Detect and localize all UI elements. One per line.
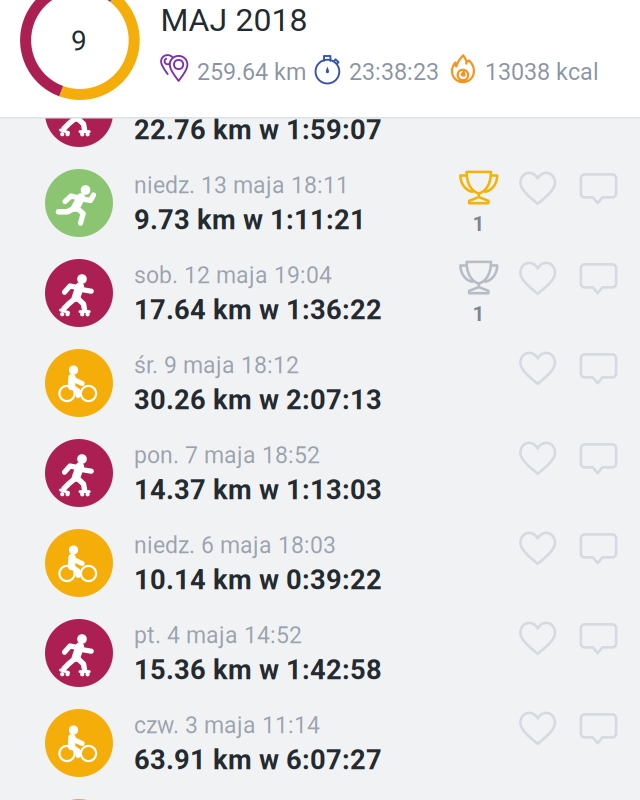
staticText: 13038 kcal bbox=[485, 58, 599, 86]
staticText: 22.76 km w 1:59:07 bbox=[134, 114, 382, 146]
staticText: pt. 4 maja 14:52 bbox=[134, 622, 302, 649]
staticText: śr. 9 maja 18:12 bbox=[134, 352, 299, 379]
button[interactable]: śr. 9 maja 18:12 bbox=[0, 338, 640, 428]
button[interactable]: niedz. 6 maja 18:03 bbox=[0, 518, 640, 608]
button[interactable]: pon. 7 maja 18:52 bbox=[0, 428, 640, 518]
button[interactable]: pt. 4 maja 14:52 bbox=[0, 608, 640, 698]
staticText: pon. 7 maja 18:52 bbox=[134, 442, 320, 469]
button[interactable] bbox=[0, 788, 640, 800]
staticText: czw. 3 maja 11:14 bbox=[134, 712, 320, 739]
staticText: 30.26 km w 2:07:13 bbox=[134, 384, 382, 416]
staticText: niedz. 13 maja 18:11 bbox=[134, 172, 349, 199]
staticText: niedz. 6 maja 18:03 bbox=[134, 532, 336, 559]
staticText: 15.36 km w 1:42:58 bbox=[134, 654, 382, 686]
button[interactable]: czw. 3 maja 11:14 bbox=[0, 698, 640, 788]
staticText: 1 bbox=[472, 212, 484, 236]
staticText: 9.73 km w 1:11:21 bbox=[134, 204, 366, 236]
staticText: MAJ 2018 bbox=[160, 1, 307, 39]
staticText: 9 bbox=[71, 25, 87, 57]
staticText: 63.91 km w 6:07:27 bbox=[134, 744, 382, 776]
staticText: 1 bbox=[472, 302, 484, 326]
staticText: sob. 12 maja 19:04 bbox=[134, 262, 332, 289]
staticText: 17.64 km w 1:36:22 bbox=[134, 294, 382, 326]
button[interactable] bbox=[0, 68, 640, 158]
button[interactable]: niedz. 13 maja 18:11 bbox=[0, 158, 640, 248]
staticText: 23:38:23 bbox=[349, 58, 439, 86]
staticText: 14.37 km w 1:13:03 bbox=[134, 474, 382, 506]
staticText: 10.14 km w 0:39:22 bbox=[134, 564, 382, 596]
button[interactable]: sob. 12 maja 19:04 bbox=[0, 248, 640, 338]
staticText: 259.64 km bbox=[197, 58, 306, 86]
